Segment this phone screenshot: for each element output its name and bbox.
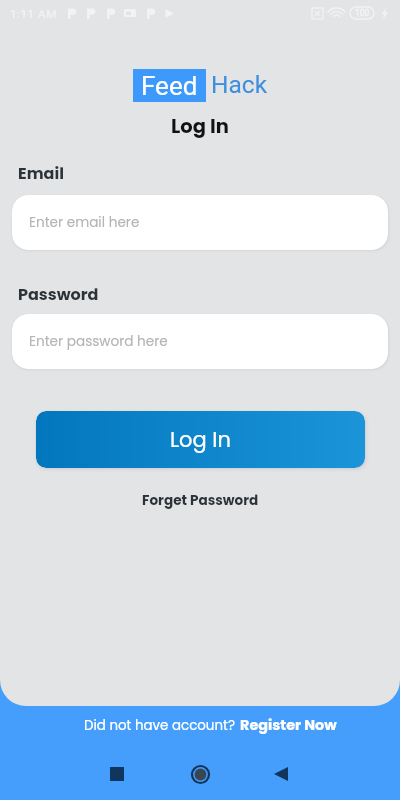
staticText: 1:11 AM [10, 7, 57, 20]
staticText: Forget Password [142, 491, 259, 510]
button[interactable]: Enter password here [12, 314, 388, 369]
button[interactable]: Forget Password [0, 488, 400, 512]
button[interactable]: Recent apps [100, 757, 134, 791]
staticText: Did not have account? [84, 716, 235, 735]
staticText: Log In [0, 113, 400, 140]
button[interactable]: Home [183, 757, 217, 791]
staticText: Register Now [240, 715, 337, 735]
staticText: Feed [141, 71, 198, 101]
button[interactable]: Enter email here [12, 195, 388, 250]
button[interactable]: Log In [36, 411, 365, 468]
button[interactable]: Back [264, 757, 298, 791]
staticText: 100 [355, 8, 370, 18]
staticText: Email [18, 162, 64, 184]
staticText: Enter password here [29, 332, 168, 351]
button[interactable]: Did not have account? [10, 705, 400, 745]
staticText: Enter email here [29, 213, 140, 232]
staticText: Password [18, 283, 99, 305]
staticText: Hack [211, 70, 268, 99]
staticText: Log In [170, 425, 231, 454]
